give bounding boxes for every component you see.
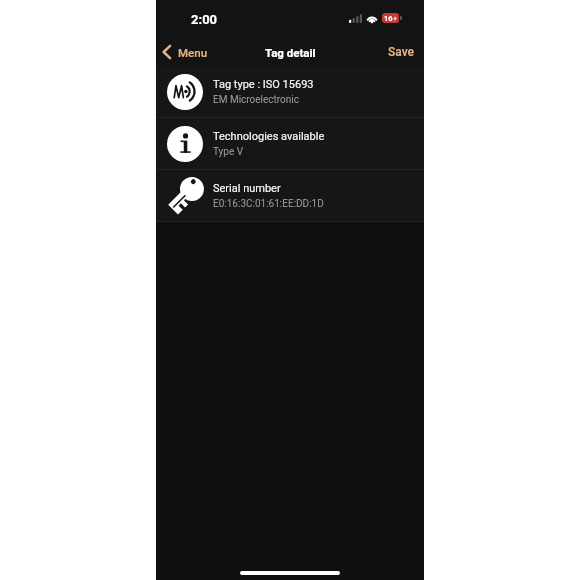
staticText: Serial number — [213, 182, 281, 195]
staticText: 2:00 — [191, 12, 218, 27]
button[interactable]: Menu — [162, 38, 208, 66]
button[interactable]: Technologies available — [156, 118, 424, 170]
button[interactable]: Save — [388, 38, 414, 66]
staticText: 16 — [384, 14, 393, 23]
staticText: Technologies available — [213, 130, 325, 143]
staticText: E0:16:3C:01:61:EE:DD:1D — [213, 198, 324, 210]
staticText: Tag detail — [265, 46, 316, 59]
staticText: Type V — [213, 146, 244, 158]
staticText: Tag type : ISO 15693 — [213, 78, 314, 91]
button[interactable]: Tag type : ISO 15693 — [156, 66, 424, 118]
staticText: EM Microelectronic — [213, 94, 300, 106]
button[interactable]: Serial number — [156, 170, 424, 222]
staticText: Save — [388, 45, 414, 59]
staticText: Menu — [178, 46, 208, 59]
